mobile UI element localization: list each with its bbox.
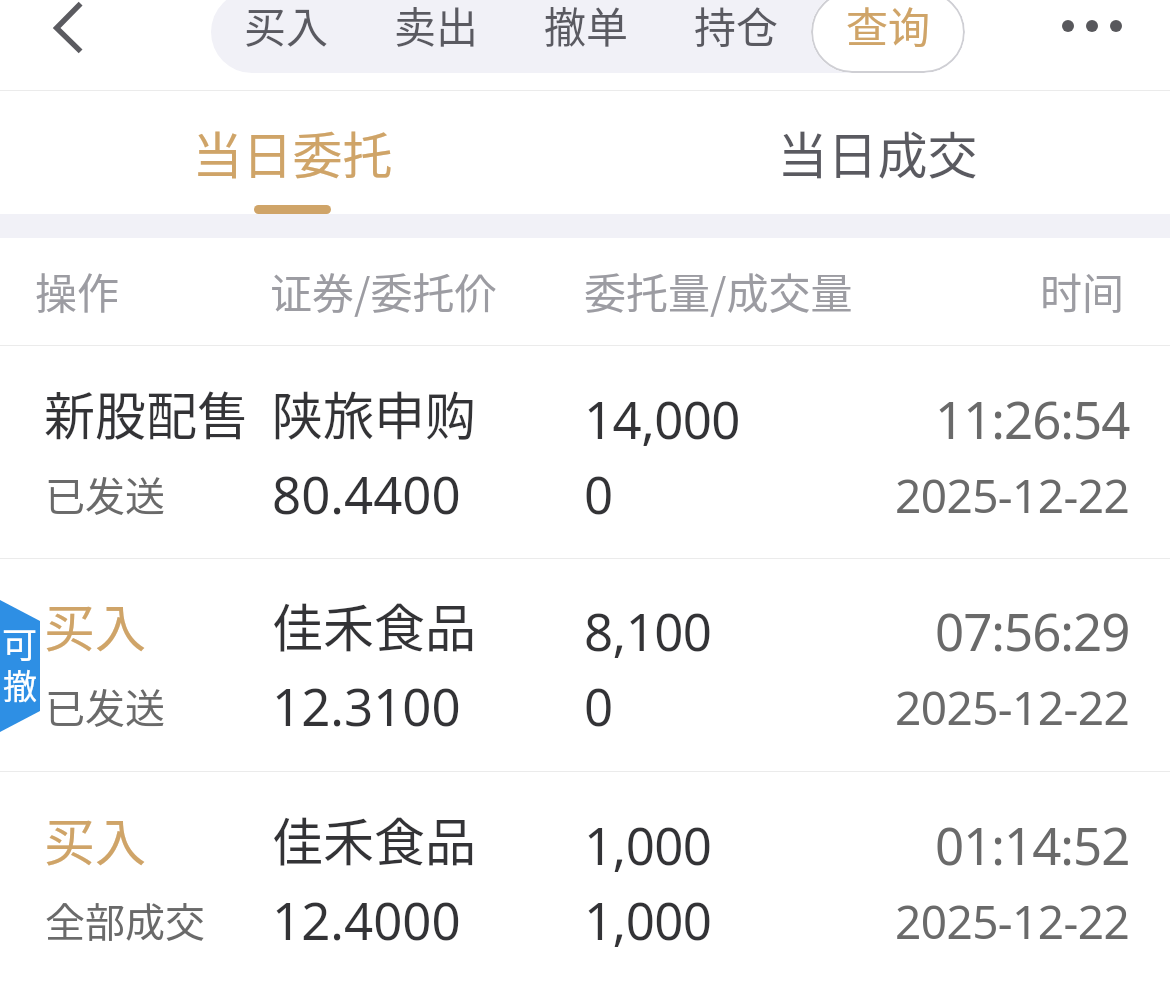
- staticText: 佳禾食品: [272, 588, 477, 662]
- staticText: 陕旅申购: [272, 376, 477, 450]
- button[interactable]: 当日委托: [0, 90, 585, 214]
- staticText: 2025-12-22: [895, 890, 1130, 953]
- staticText: 已发送: [45, 465, 165, 523]
- staticText: 新股配售: [44, 376, 249, 450]
- staticText: 卖出: [394, 0, 479, 55]
- staticText: 1,000: [584, 810, 712, 879]
- staticText: 14,000: [584, 384, 740, 453]
- staticText: 01:14:52: [935, 810, 1130, 879]
- button[interactable]: 撤单: [511, 0, 661, 73]
- staticText: 买入: [44, 588, 147, 662]
- button[interactable]: 当日成交: [585, 90, 1170, 214]
- staticText: 可: [2, 617, 38, 668]
- staticText: 持仓: [694, 0, 779, 55]
- staticText: 当日成交: [585, 116, 1170, 188]
- staticText: 0: [584, 671, 613, 740]
- button[interactable]: 买入: [0, 557, 1170, 769]
- staticText: 07:56:29: [935, 596, 1130, 665]
- staticText: 1,000: [584, 885, 712, 954]
- staticText: 2025-12-22: [895, 464, 1130, 527]
- staticText: 买入: [44, 802, 147, 876]
- staticText: 委托量/成交量: [584, 260, 853, 321]
- button[interactable]: 买入: [211, 0, 361, 73]
- staticText: 80.4400: [272, 459, 461, 528]
- button[interactable]: Back: [22, 0, 114, 80]
- staticText: 8,100: [584, 596, 712, 665]
- button[interactable]: 查询: [811, 0, 965, 73]
- staticText: 当日委托: [0, 116, 585, 188]
- staticText: 12.4000: [272, 885, 461, 954]
- button[interactable]: 持仓: [661, 0, 811, 73]
- staticText: 证券/委托价: [270, 260, 497, 321]
- staticText: 买入: [244, 0, 329, 55]
- staticText: 操作: [35, 260, 120, 321]
- staticText: 0: [584, 459, 613, 528]
- staticText: 12.3100: [272, 671, 461, 740]
- button[interactable]: 新股配售: [0, 345, 1170, 557]
- staticText: 时间: [1040, 260, 1125, 321]
- button[interactable]: 卖出: [361, 0, 511, 73]
- staticText: 佳禾食品: [272, 802, 477, 876]
- staticText: 全部成交: [45, 891, 205, 949]
- staticText: 11:26:54: [935, 384, 1130, 453]
- staticText: 撤单: [544, 0, 629, 55]
- button[interactable]: More options: [1040, 0, 1144, 52]
- staticText: 2025-12-22: [895, 676, 1130, 739]
- staticText: 查询: [846, 0, 931, 55]
- button[interactable]: 买入: [0, 771, 1170, 981]
- staticText: 已发送: [45, 677, 165, 735]
- staticText: 撤: [3, 660, 37, 709]
